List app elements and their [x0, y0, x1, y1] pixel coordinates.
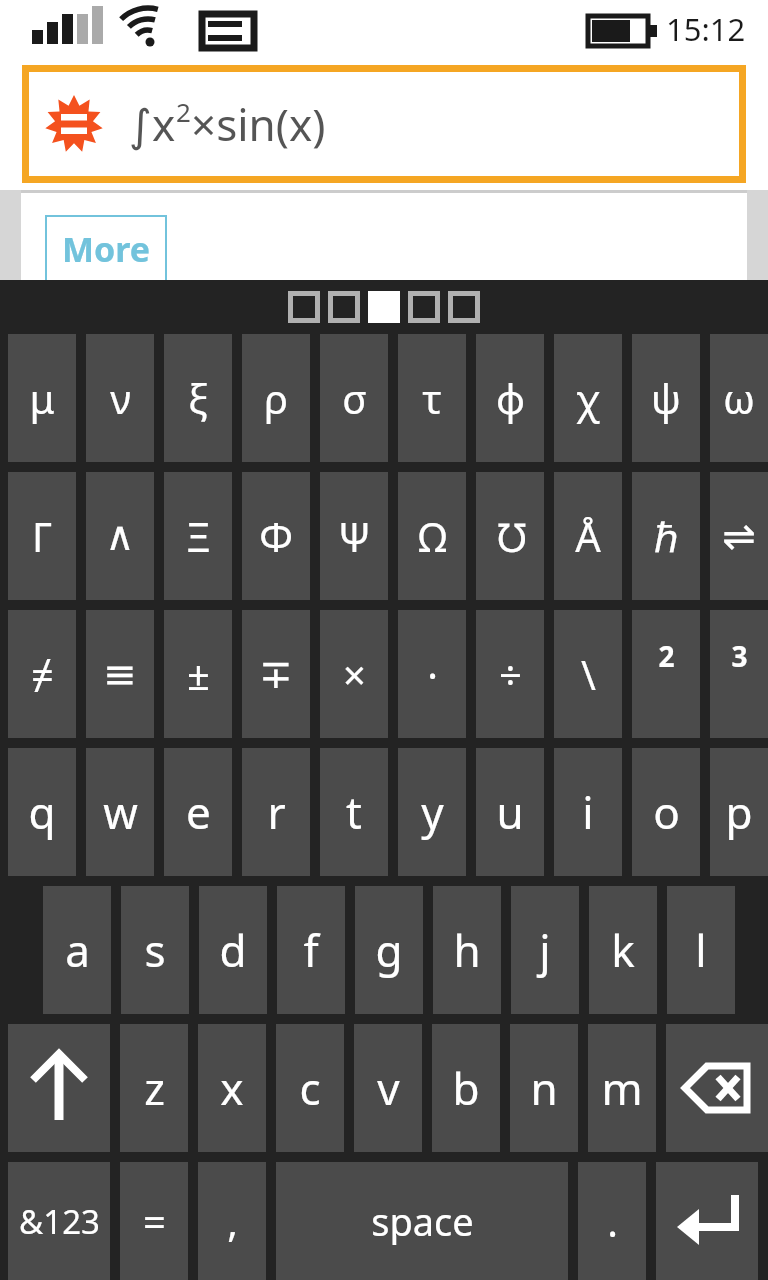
staticText: x	[220, 1058, 244, 1118]
button[interactable]: a	[43, 886, 111, 1014]
button[interactable]: i	[554, 748, 622, 876]
button[interactable]: =	[120, 1162, 188, 1280]
button[interactable]: &123	[8, 1162, 110, 1280]
button[interactable]: Φ	[242, 472, 310, 600]
button[interactable]: q	[8, 748, 76, 876]
button[interactable]: ×	[320, 610, 388, 738]
button[interactable]: More	[47, 217, 165, 281]
staticText: n	[530, 1058, 558, 1118]
button[interactable]: ⇌	[710, 472, 768, 600]
staticText: ∫x	[129, 94, 176, 154]
staticText: ⇌	[722, 513, 756, 560]
button[interactable]: .	[578, 1162, 646, 1280]
button[interactable]: Enter	[656, 1162, 758, 1280]
button[interactable]: y	[398, 748, 466, 876]
staticText: Ψ	[338, 509, 371, 563]
staticText: σ	[342, 371, 367, 425]
button[interactable]: σ	[320, 334, 388, 462]
staticText: space	[371, 1195, 474, 1247]
button[interactable]: h	[433, 886, 501, 1014]
button[interactable]: r	[242, 748, 310, 876]
button[interactable]: m	[588, 1024, 656, 1152]
button[interactable]: space	[276, 1162, 568, 1280]
button[interactable]: Å	[554, 472, 622, 600]
button[interactable]: l	[667, 886, 735, 1014]
button[interactable]: ρ	[242, 334, 310, 462]
button[interactable]: c	[276, 1024, 344, 1152]
staticText: Φ	[259, 509, 293, 563]
staticText: ℧	[495, 509, 526, 563]
button[interactable]: s	[121, 886, 189, 1014]
button[interactable]: ∫x	[29, 72, 739, 176]
staticText: More	[62, 226, 151, 272]
button[interactable]: φ	[476, 334, 544, 462]
button[interactable]: ·	[398, 610, 466, 738]
button[interactable]: x	[198, 1024, 266, 1152]
button[interactable]: t	[320, 748, 388, 876]
button[interactable]: \	[554, 610, 622, 738]
staticText: a	[65, 920, 90, 980]
button[interactable]: Ω	[398, 472, 466, 600]
button[interactable]: ÷	[476, 610, 544, 738]
button[interactable]: ξ	[164, 334, 232, 462]
button[interactable]: ≠	[8, 610, 76, 738]
button[interactable]: g	[355, 886, 423, 1014]
button[interactable]: d	[199, 886, 267, 1014]
button[interactable]: ℏ	[632, 472, 700, 600]
staticText: ω	[723, 371, 755, 425]
button[interactable]: b	[432, 1024, 500, 1152]
staticText: ≠	[31, 647, 54, 701]
button[interactable]: Shift	[8, 1024, 110, 1152]
staticText: ξ	[188, 371, 208, 425]
staticText: h	[453, 920, 481, 980]
button[interactable]: Γ	[8, 472, 76, 600]
button[interactable]: Ξ	[164, 472, 232, 600]
staticText: d	[219, 920, 247, 980]
button[interactable]: e	[164, 748, 232, 876]
staticText: 2	[176, 94, 191, 129]
staticText: ±	[187, 647, 210, 701]
button[interactable]: w	[86, 748, 154, 876]
staticText: r	[267, 782, 286, 842]
button[interactable]: k	[589, 886, 657, 1014]
button[interactable]: ω	[710, 334, 768, 462]
button[interactable]: τ	[398, 334, 466, 462]
button[interactable]: ν	[86, 334, 154, 462]
button[interactable]: ψ	[632, 334, 700, 462]
staticText: τ	[422, 371, 442, 425]
button[interactable]: χ	[554, 334, 622, 462]
button[interactable]: j	[511, 886, 579, 1014]
button[interactable]: v	[354, 1024, 422, 1152]
button[interactable]: f	[277, 886, 345, 1014]
button[interactable]: ∓	[242, 610, 310, 738]
staticText: ∓	[259, 651, 293, 698]
button[interactable]: ±	[164, 610, 232, 738]
staticText: .	[607, 1194, 618, 1248]
button[interactable]: u	[476, 748, 544, 876]
staticText: v	[377, 1058, 400, 1118]
staticText: ×	[343, 647, 366, 701]
button[interactable]: μ	[8, 334, 76, 462]
button[interactable]: 2	[632, 610, 700, 738]
staticText: f	[303, 920, 319, 980]
button[interactable]: p	[710, 748, 768, 876]
button[interactable]: o	[632, 748, 700, 876]
staticText: g	[375, 920, 403, 980]
staticText: 3	[731, 637, 748, 675]
button[interactable]: ≡	[86, 610, 154, 738]
staticText: ×sin(x)	[191, 94, 326, 154]
button[interactable]: ,	[198, 1162, 266, 1280]
button[interactable]: 3	[710, 610, 768, 738]
button[interactable]: Backspace	[666, 1024, 768, 1152]
button[interactable]: n	[510, 1024, 578, 1152]
button[interactable]: ℧	[476, 472, 544, 600]
button[interactable]: Ψ	[320, 472, 388, 600]
button[interactable]: ∧	[86, 472, 154, 600]
staticText: \	[581, 647, 596, 701]
button[interactable]: z	[120, 1024, 188, 1152]
